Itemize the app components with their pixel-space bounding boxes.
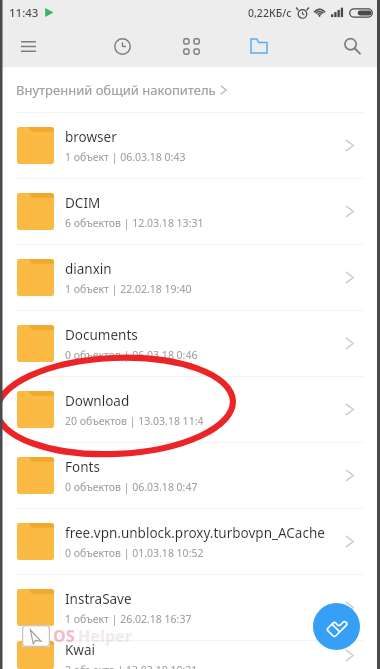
staticText: Download [65,392,130,410]
button[interactable]: Внутренний общий накопитель [0,67,380,112]
button[interactable]: Menu [6,25,50,67]
staticText: 0 объектов | 01.03.18 10:52 [65,546,204,560]
button[interactable]: Files [237,25,281,67]
button[interactable]: Recent [100,25,144,67]
button[interactable]: Fonts [0,443,380,508]
staticText: Fonts [65,458,100,476]
staticText: Kwai [65,641,96,659]
staticText: 6 объектов | 12.03.18 13:31 [65,216,204,230]
staticText: Внутренний общий накопитель [16,81,216,99]
button[interactable]: Clean up [313,603,360,650]
button[interactable]: free.vpn.unblock.proxy.turbovpn_ACache [0,509,380,574]
button[interactable]: Download [0,377,380,442]
staticText: 2 объекта | 13.03.18 10:21 [65,663,198,669]
staticText: 1 объект | 06.03.18 0:43 [65,150,186,164]
staticText: 20 объектов | 13.03.18 11:4 [65,414,204,428]
button[interactable]: Search [330,25,374,67]
button[interactable]: DCIM [0,179,380,244]
button[interactable]: InstraSave [0,575,380,640]
button[interactable]: browser [0,113,380,178]
staticText: Helper [78,625,133,647]
staticText: 0 объектов | 06.03.18 0:46 [65,348,198,362]
button[interactable]: Documents [0,311,380,376]
staticText: InstraSave [65,590,132,608]
button[interactable]: Kwai [0,641,380,669]
staticText: dianxin [65,260,112,278]
button[interactable]: Categories [169,25,213,67]
staticText: free.vpn.unblock.proxy.turbovpn_ACache [65,524,325,542]
staticText: 1 объект | 26.02.18 16:37 [65,612,192,626]
staticText: DCIM [65,194,101,212]
staticText: browser [65,128,117,146]
staticText: 0 объектов | 06.03.18 0:47 [65,480,198,494]
staticText: OS [53,625,75,647]
staticText: 1 объект | 22.02.18 19:40 [65,282,192,296]
staticText: Documents [65,326,138,344]
button[interactable]: dianxin [0,245,380,310]
staticText: 0,22КБ/c [248,6,292,20]
staticText: 11:43 [9,5,39,21]
